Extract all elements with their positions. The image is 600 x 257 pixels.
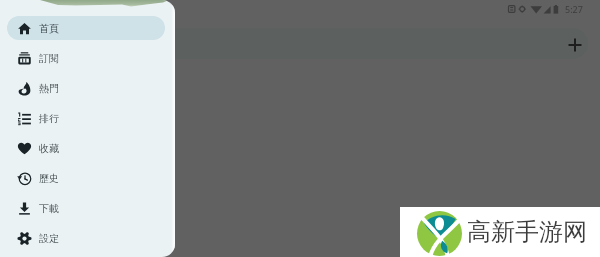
button[interactable]: 首頁 [7, 16, 165, 40]
button[interactable] [8, 28, 588, 59]
button[interactable]: Add [563, 33, 587, 57]
button[interactable]: 訂閱 [7, 46, 165, 70]
button[interactable]: 下載 [7, 196, 165, 220]
staticText: 歷史 [39, 172, 59, 185]
staticText: 收藏 [39, 142, 59, 155]
staticText: 下載 [39, 202, 59, 215]
button[interactable]: 設定 [7, 226, 165, 250]
staticText: 首頁 [39, 22, 59, 35]
staticText: 高新手游网 [467, 217, 587, 247]
button[interactable]: 排行 [7, 106, 165, 130]
staticText: 熱門 [39, 82, 59, 95]
button[interactable]: 收藏 [7, 136, 165, 160]
button[interactable]: 熱門 [7, 76, 165, 100]
button[interactable]: 歷史 [7, 166, 165, 190]
staticText: 排行 [39, 112, 59, 125]
staticText: 設定 [39, 232, 59, 245]
staticText: 訂閱 [39, 52, 59, 65]
staticText: 5:27 [565, 3, 583, 15]
